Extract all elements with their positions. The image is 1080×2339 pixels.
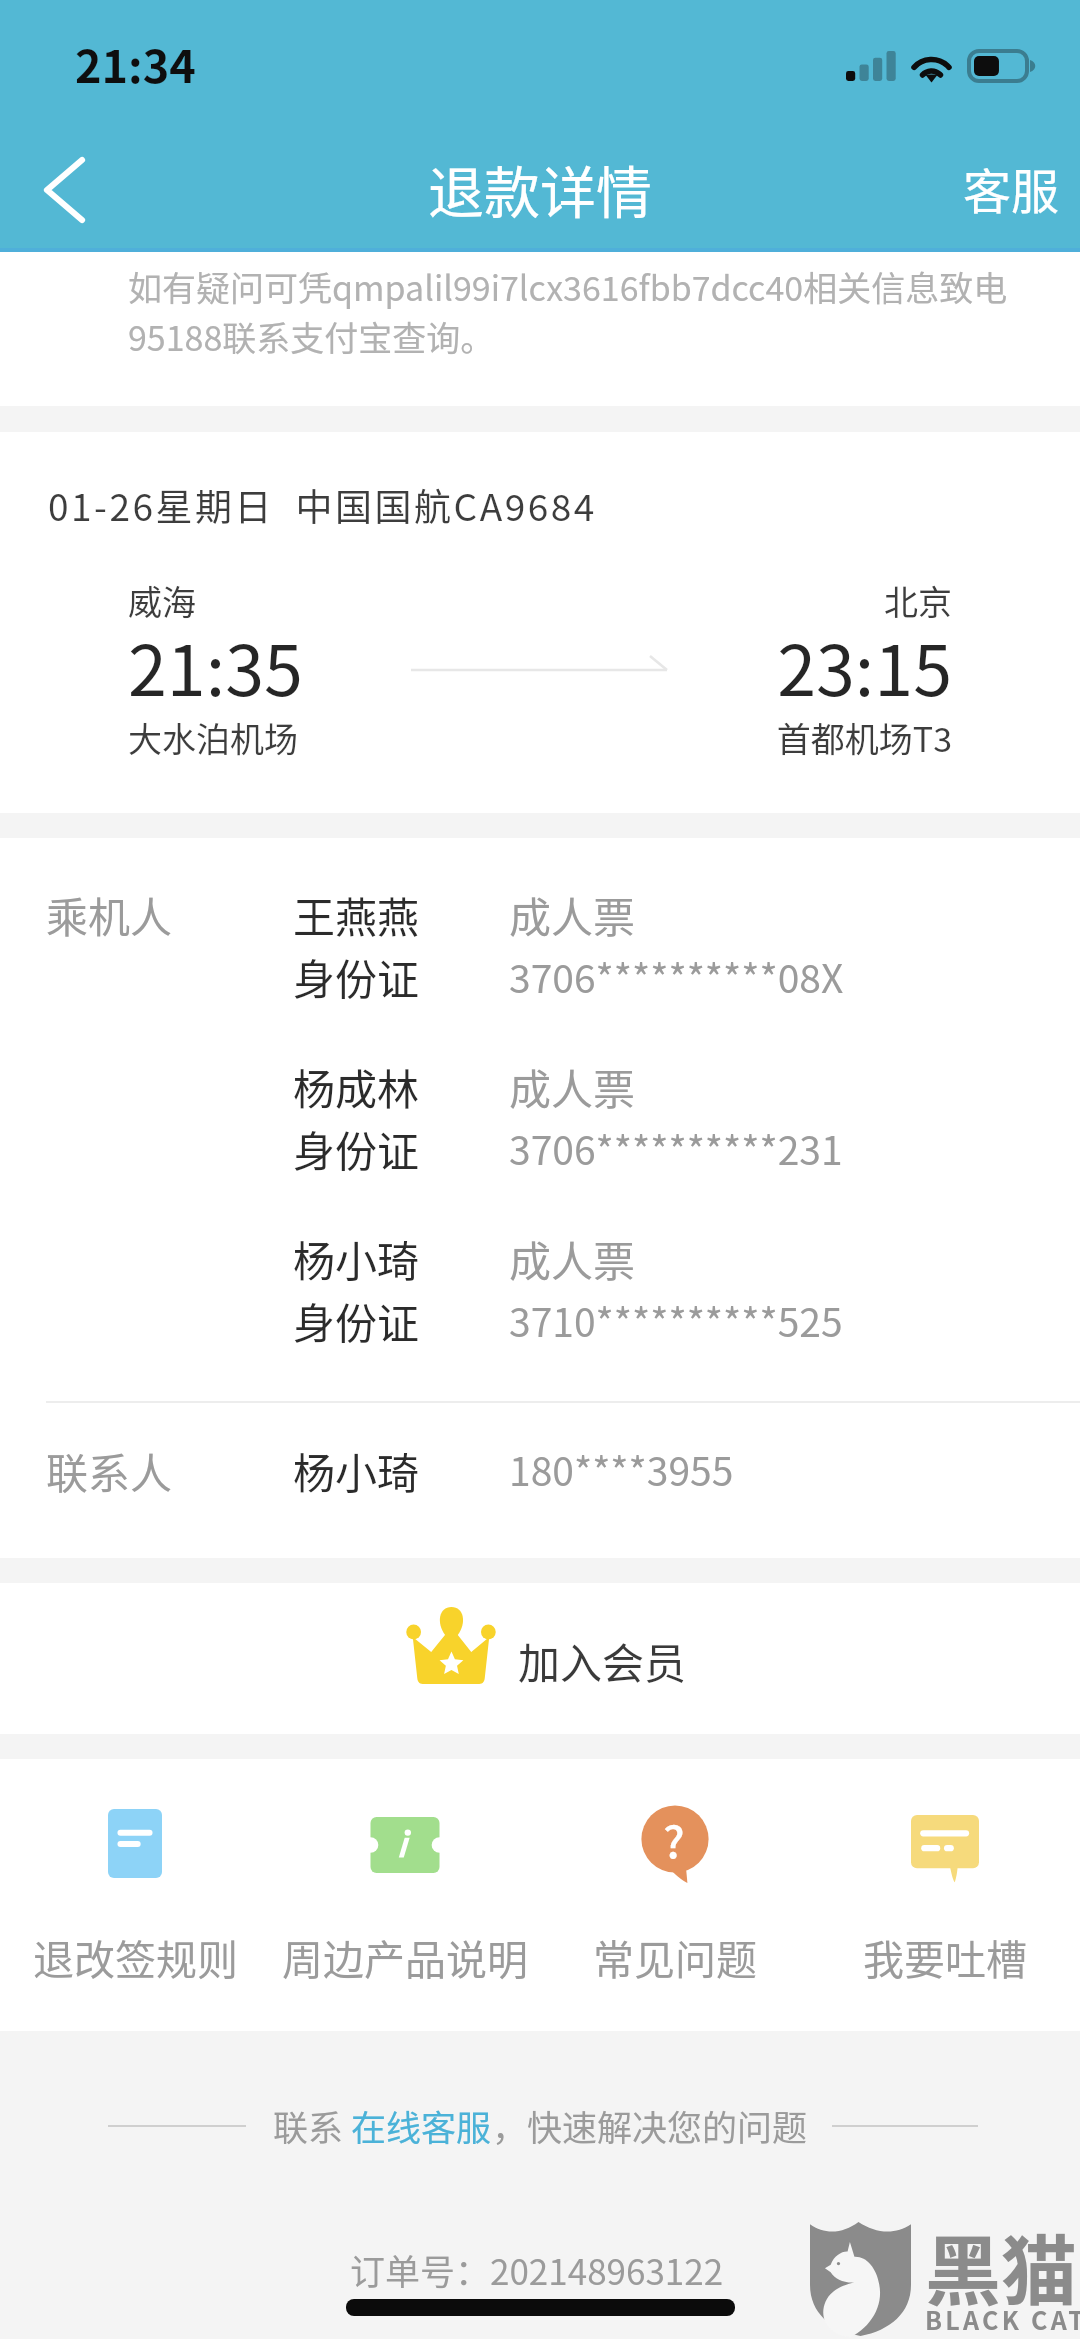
staticText: 退改签规则 <box>33 1927 238 1986</box>
staticText: 21:35 <box>128 615 303 716</box>
staticText: 身份证 <box>293 1290 420 1351</box>
button[interactable]: ? <box>540 1759 810 2031</box>
staticText: 身份证 <box>293 946 420 1007</box>
button[interactable]: 在线客服 <box>351 2100 492 2151</box>
staticText: BLACK CAT <box>925 2301 1080 2337</box>
staticText: 成人票 <box>509 1056 636 1117</box>
staticText: 3706**********08X <box>509 948 844 1004</box>
staticText: 退款详情 <box>428 148 652 229</box>
staticText: 如有疑问可凭qmpalil99i7lcx3616fbb7dcc40相关信息致电9… <box>128 262 1028 361</box>
staticText: 大水泊机场 <box>128 713 298 762</box>
staticText: 成人票 <box>509 1228 636 1289</box>
button[interactable]: 加入会员 <box>0 1583 1080 1734</box>
staticText: 杨小琦 <box>293 1228 420 1289</box>
staticText: 客服 <box>963 153 1060 223</box>
staticText: 威海 <box>128 576 196 625</box>
button[interactable]: Back <box>0 128 140 252</box>
staticText: 23:15 <box>552 615 952 716</box>
staticText: 王燕燕 <box>293 884 420 945</box>
staticText: 3706**********231 <box>509 1120 843 1176</box>
staticText: ，快速解决您的问题 <box>492 2100 808 2151</box>
staticText: 21:34 <box>75 31 196 96</box>
button[interactable]: 我要吐槽 <box>810 1759 1080 2031</box>
staticText: 我要吐槽 <box>863 1927 1027 1986</box>
staticText: 3710**********525 <box>509 1292 843 1348</box>
staticText: 北京 <box>552 576 952 625</box>
staticText: 180****3955 <box>509 1441 734 1497</box>
staticText: 乘机人 <box>46 884 173 945</box>
staticText: 周边产品说明 <box>282 1927 528 1986</box>
staticText: 常见问题 <box>593 1927 757 1986</box>
staticText: 01-26星期日 中国国航CA9684 <box>48 478 597 532</box>
staticText: 杨小琦 <box>293 1440 420 1501</box>
button[interactable]: 退改签规则 <box>0 1759 270 2031</box>
staticText: 联系 <box>273 2100 351 2151</box>
staticText: 联系人 <box>46 1440 173 1501</box>
button[interactable]: 周边产品说明 <box>270 1759 540 2031</box>
staticText: 订单号：202148963122 <box>350 2244 724 2295</box>
button[interactable]: 客服 <box>890 128 1080 252</box>
staticText: 首都机场T3 <box>552 713 952 762</box>
staticText: 身份证 <box>293 1118 420 1179</box>
staticText: 黑猫 <box>925 2211 1077 2321</box>
staticText: 加入会员 <box>518 1630 687 1691</box>
staticText: ? <box>663 1807 685 1871</box>
staticText: 杨成林 <box>293 1056 420 1117</box>
staticText: 在线客服 <box>351 2100 492 2151</box>
staticText: 成人票 <box>509 884 636 945</box>
